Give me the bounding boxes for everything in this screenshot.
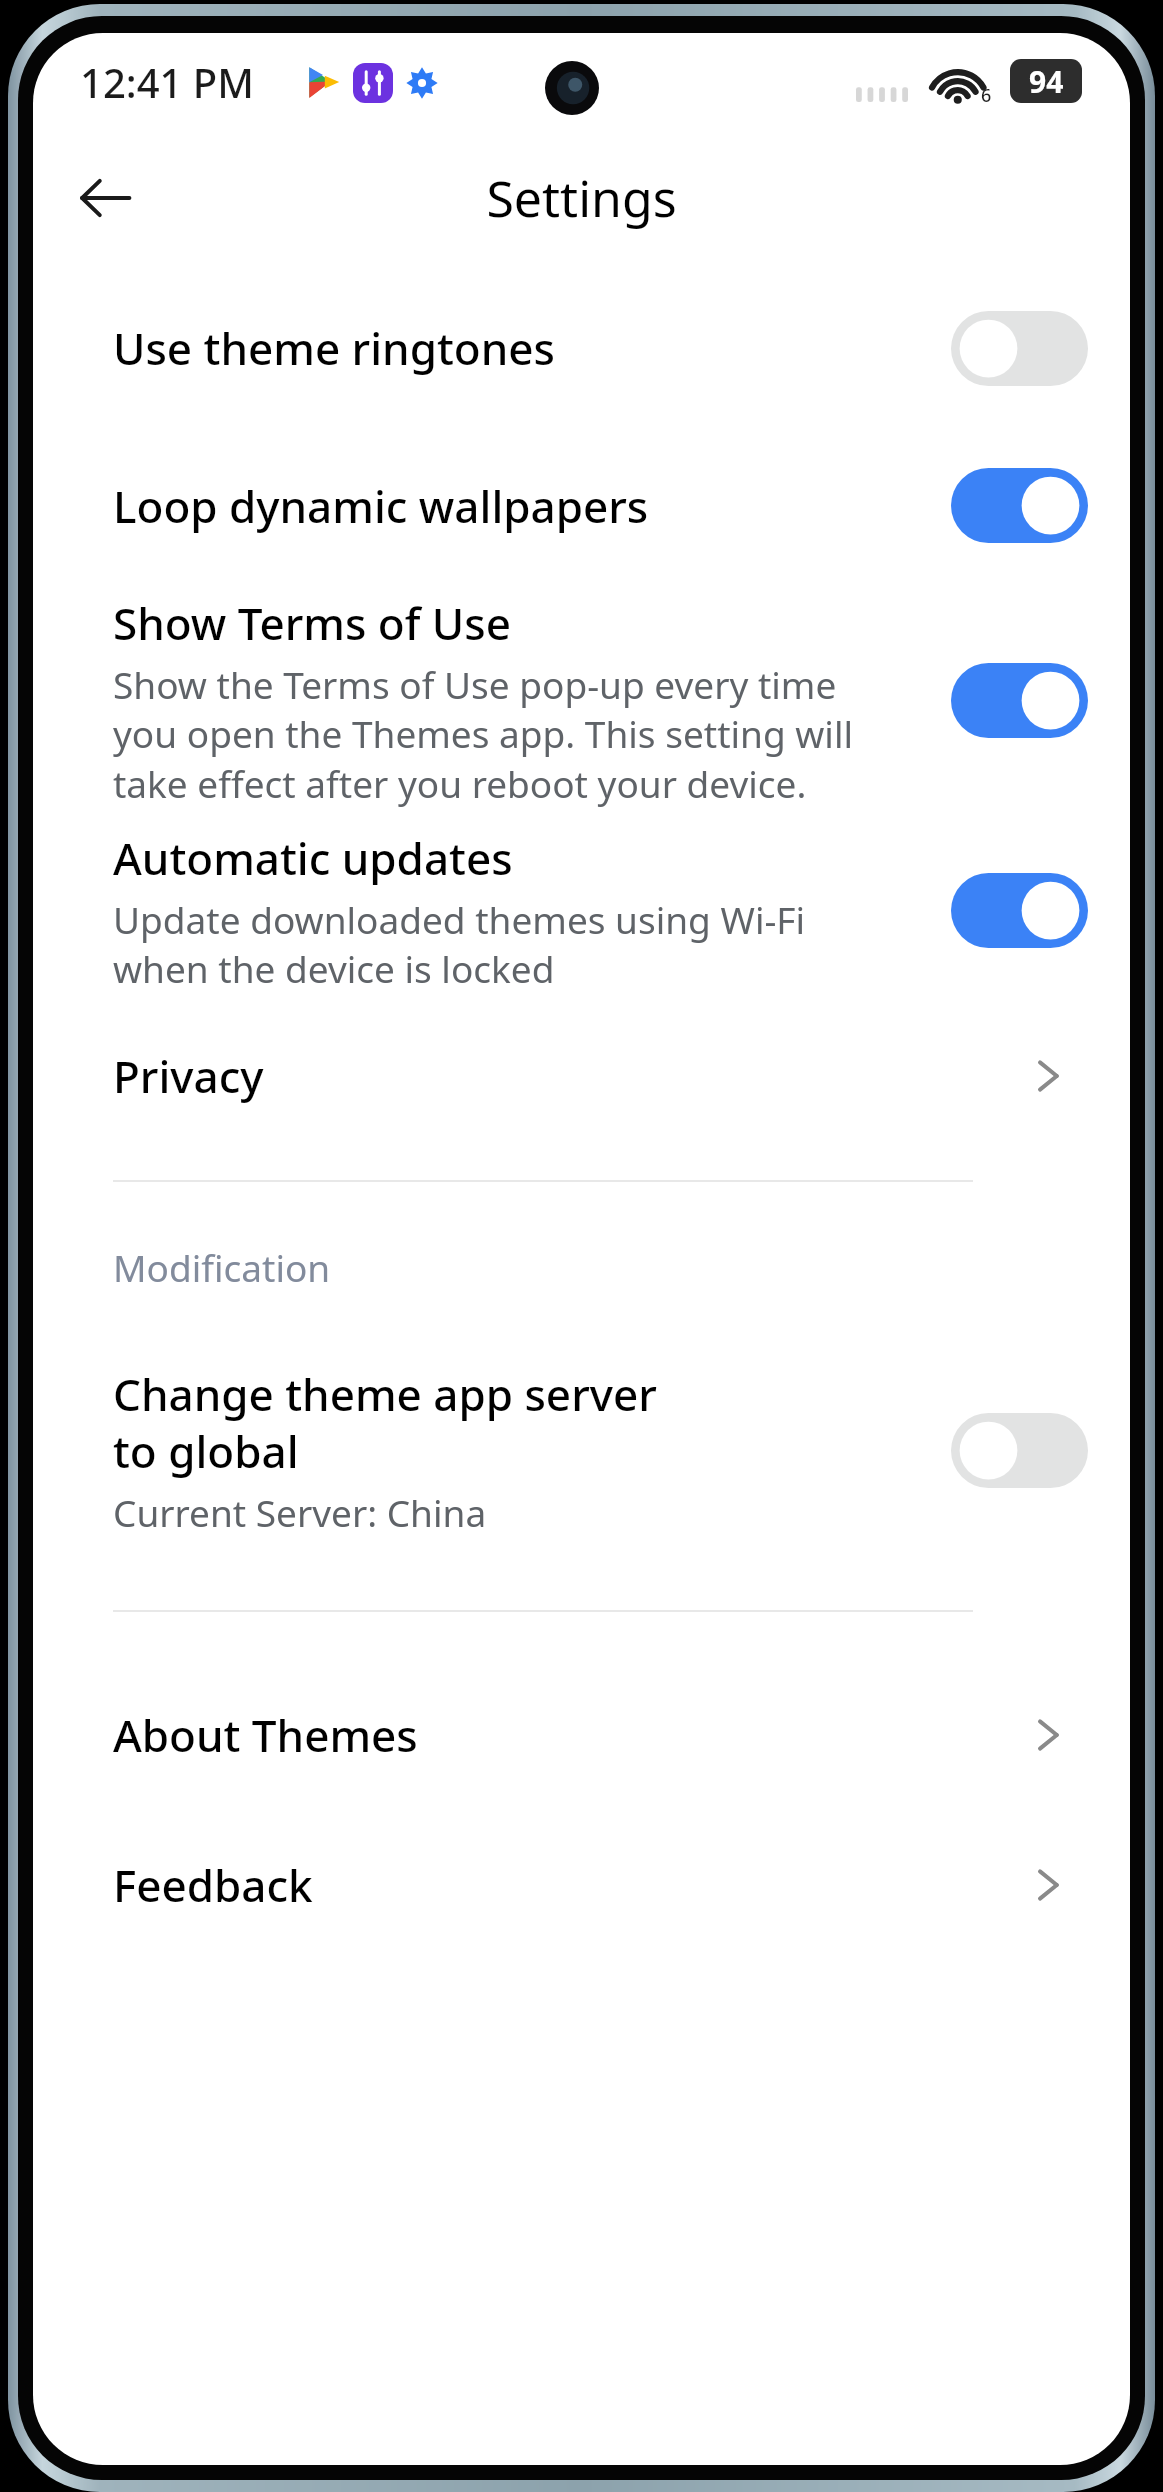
staticText: Current Server: China — [113, 1487, 487, 1537]
staticText: Change theme app server to global — [113, 1364, 673, 1481]
button[interactable]: On — [951, 468, 1088, 543]
button[interactable]: Automatic updates — [33, 818, 1130, 1003]
staticText: Automatic updates — [113, 828, 513, 888]
button[interactable]: Off — [951, 311, 1088, 386]
staticText: Settings — [33, 164, 1130, 232]
staticText: Show the Terms of Use pop-up every time … — [113, 659, 893, 809]
button[interactable]: About Themes — [33, 1660, 1130, 1810]
staticText: Modification — [113, 1242, 331, 1292]
button[interactable]: Privacy — [33, 1003, 1130, 1148]
button[interactable]: Loop dynamic wallpapers — [33, 428, 1130, 583]
staticText: Privacy — [113, 1046, 264, 1106]
button[interactable]: On — [951, 873, 1088, 948]
staticText: 94 — [1029, 61, 1064, 102]
button[interactable]: Off — [951, 1413, 1088, 1488]
button[interactable]: Use theme ringtones — [33, 268, 1130, 428]
button[interactable]: On — [951, 663, 1088, 738]
button[interactable]: Show Terms of Use — [33, 583, 1130, 818]
button[interactable]: Change theme app server to global — [33, 1330, 1130, 1570]
staticText: Use theme ringtones — [113, 318, 555, 378]
button[interactable]: Back — [55, 148, 155, 248]
staticText: 6 — [981, 83, 992, 108]
staticText: Feedback — [113, 1855, 313, 1915]
staticText: About Themes — [113, 1705, 418, 1765]
staticText: Update downloaded themes using Wi-Fi whe… — [113, 894, 893, 994]
staticText: Loop dynamic wallpapers — [113, 476, 649, 536]
button[interactable]: Feedback — [33, 1810, 1130, 1960]
staticText: Show Terms of Use — [113, 593, 511, 653]
staticText: 12:41 PM — [80, 55, 254, 109]
